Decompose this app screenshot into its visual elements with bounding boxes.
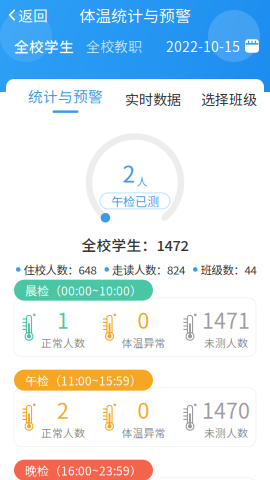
button[interactable]: 全校教职 bbox=[86, 36, 146, 56]
staticText: 全校学生 bbox=[14, 35, 74, 57]
staticText: 1470 bbox=[202, 394, 250, 425]
staticText: 体温异常 bbox=[121, 425, 165, 440]
staticText: 走读人数：824 bbox=[112, 261, 185, 278]
button[interactable]: 返回 bbox=[0, 4, 56, 26]
button[interactable]: 实时数据 bbox=[125, 79, 181, 119]
button[interactable]: 统计与预警 bbox=[28, 79, 103, 119]
staticText: 体温统计与预警 bbox=[79, 3, 191, 27]
staticText: 人 bbox=[136, 173, 147, 189]
staticText: 返回 bbox=[18, 4, 48, 26]
staticText: 正常人数 bbox=[41, 425, 85, 440]
staticText: 0 bbox=[137, 304, 149, 335]
staticText: 午检已测 bbox=[111, 192, 159, 210]
staticText: 0 bbox=[137, 394, 149, 425]
staticText: 2 bbox=[122, 156, 135, 189]
staticText: 体温异常 bbox=[121, 335, 165, 350]
staticText: 统计与预警 bbox=[28, 85, 103, 106]
staticText: 午检（11:00~15:59） bbox=[25, 371, 142, 389]
staticText: 正常人数 bbox=[41, 335, 85, 350]
staticText: 选择班级 bbox=[201, 89, 257, 109]
staticText: 班级数：44 bbox=[200, 261, 256, 278]
staticText: 全校学生：1472 bbox=[81, 234, 188, 255]
staticText: 1471 bbox=[202, 304, 250, 335]
button[interactable]: 选择班级 bbox=[201, 79, 257, 119]
button[interactable]: 全校学生 bbox=[0, 36, 78, 56]
button[interactable]: 2022-10-15 bbox=[166, 36, 270, 56]
staticText: 2 bbox=[57, 394, 69, 425]
staticText: 2022-10-15 bbox=[166, 36, 240, 56]
staticText: 1 bbox=[57, 304, 69, 335]
staticText: 未测人数 bbox=[204, 425, 248, 440]
staticText: 实时数据 bbox=[125, 89, 181, 109]
staticText: 未测人数 bbox=[204, 335, 248, 350]
staticText: 晨检（00:00~10:00） bbox=[25, 281, 142, 299]
staticText: 晚检（16:00~23:59） bbox=[25, 461, 142, 479]
staticText: 住校人数：648 bbox=[23, 261, 96, 278]
staticText: 全校教职 bbox=[86, 36, 142, 56]
